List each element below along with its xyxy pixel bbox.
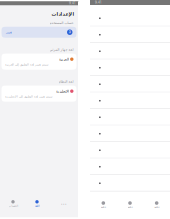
staticText: العربية bbox=[59, 57, 69, 61]
staticText: علامة bbox=[100, 206, 106, 209]
button[interactable] bbox=[90, 59, 170, 76]
button[interactable] bbox=[90, 10, 170, 26]
button[interactable] bbox=[90, 92, 170, 109]
button[interactable] bbox=[90, 175, 170, 191]
button[interactable] bbox=[90, 26, 170, 43]
button[interactable]: العربية bbox=[1, 54, 76, 70]
button[interactable] bbox=[90, 43, 170, 59]
staticText: سيتم تغيير لغة التطبيق إلى الإنجليزية bbox=[4, 95, 51, 98]
staticText: الإعدادات bbox=[51, 11, 74, 17]
staticText: الإنجليزية bbox=[56, 89, 69, 93]
staticText: سيتم تغيير لغة التطبيق إلى العربية bbox=[4, 63, 47, 66]
staticText: حساب المستخدم bbox=[49, 21, 73, 25]
button[interactable]: الحساب bbox=[1, 198, 25, 209]
staticText: علامة bbox=[127, 206, 133, 209]
button[interactable] bbox=[90, 125, 170, 142]
staticText: علامة bbox=[154, 206, 160, 209]
staticText: تغيير bbox=[5, 30, 11, 34]
button[interactable]: More bbox=[57, 198, 71, 209]
button[interactable]: اللغة bbox=[25, 198, 49, 209]
staticText: ••• bbox=[61, 202, 67, 205]
staticText: الحساب bbox=[8, 204, 18, 207]
staticText: 3 bbox=[69, 30, 71, 34]
button[interactable] bbox=[90, 142, 170, 158]
button[interactable]: علامة bbox=[117, 199, 143, 210]
button[interactable]: علامة bbox=[90, 199, 117, 210]
button[interactable] bbox=[90, 76, 170, 92]
button[interactable]: الإنجليزية bbox=[1, 86, 76, 102]
button[interactable]: تغيير bbox=[1, 27, 76, 38]
staticText: اللغة bbox=[34, 204, 39, 207]
staticText: لغة النظام bbox=[58, 80, 73, 84]
staticText: 9:41 bbox=[69, 1, 75, 5]
staticText: لغة جهاز المرئي bbox=[49, 48, 73, 52]
staticText: 9:41 bbox=[95, 1, 101, 4]
button[interactable] bbox=[90, 158, 170, 175]
button[interactable]: علامة bbox=[143, 199, 170, 210]
button[interactable] bbox=[90, 109, 170, 125]
